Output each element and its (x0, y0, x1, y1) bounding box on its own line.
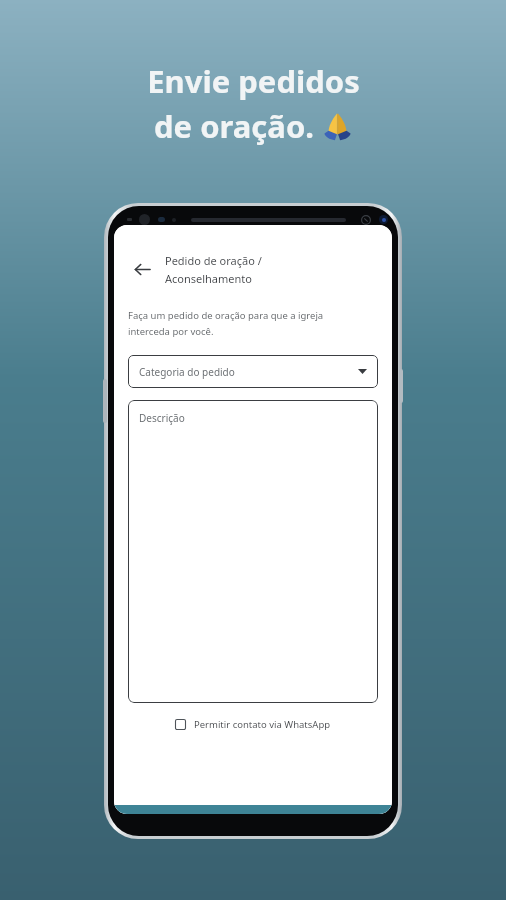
staticText: interceda por você. (128, 325, 214, 338)
staticText: Envie pedidos (147, 60, 360, 102)
staticText: de oração. (154, 105, 323, 147)
button[interactable]: Voltar (125, 252, 159, 286)
staticText: Aconselhamento (165, 271, 252, 286)
staticText: Faça um pedido de oração para que a igre… (128, 309, 324, 322)
button[interactable]: Descrição (128, 400, 378, 703)
staticText: Pedido de oração / (165, 253, 262, 268)
staticText: Permitir contato via WhatsApp (194, 718, 331, 731)
button[interactable]: Categoria do pedido (128, 355, 378, 388)
staticText: Descrição (139, 411, 185, 425)
staticText: Categoria do pedido (139, 365, 235, 379)
button[interactable]: Permitir contato via WhatsApp (114, 715, 392, 734)
